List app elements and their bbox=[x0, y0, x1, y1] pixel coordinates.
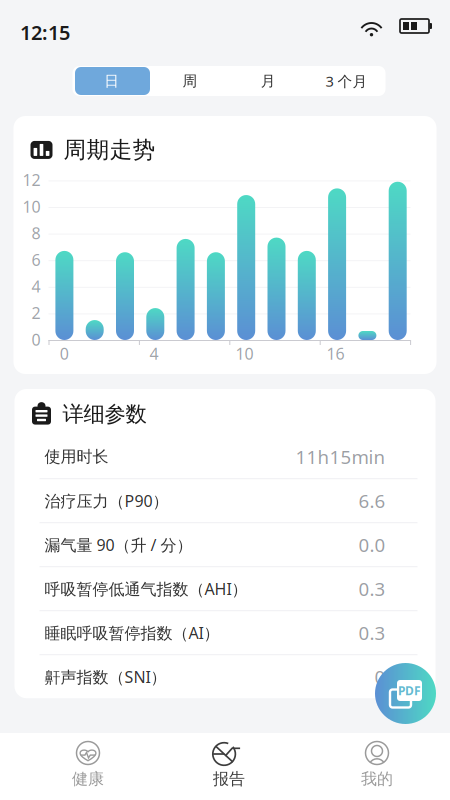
staticText: 治疗压力（P90） bbox=[44, 490, 168, 511]
staticText: 日 bbox=[104, 72, 119, 90]
staticText: 0 bbox=[31, 329, 40, 350]
staticText: 月 bbox=[261, 72, 276, 90]
staticText: 4 bbox=[150, 343, 159, 364]
button[interactable]: 报告 bbox=[155, 733, 295, 800]
staticText: 0 bbox=[60, 343, 69, 364]
staticText: 0.3 bbox=[358, 620, 385, 645]
button[interactable]: 鼾声指数（SNI） bbox=[14, 655, 435, 698]
button[interactable]: 3 个月 bbox=[307, 66, 385, 96]
staticText: 12 bbox=[22, 169, 40, 190]
staticText: 3 个月 bbox=[325, 71, 367, 91]
staticText: 12:15 bbox=[20, 19, 70, 46]
staticText: 2 bbox=[31, 302, 40, 323]
staticText: 0 bbox=[374, 664, 385, 689]
button[interactable]: 导出 PDF bbox=[375, 663, 436, 724]
button[interactable]: 我的 bbox=[307, 733, 447, 800]
button[interactable]: 漏气量 90（升 / 分） bbox=[14, 523, 435, 566]
button[interactable]: 月 bbox=[229, 66, 307, 96]
staticText: 6.6 bbox=[358, 488, 385, 513]
staticText: 4 bbox=[31, 276, 40, 297]
staticText: 周期走势 bbox=[63, 136, 155, 164]
staticText: 我的 bbox=[361, 769, 393, 789]
staticText: 鼾声指数（SNI） bbox=[44, 666, 166, 687]
staticText: 周 bbox=[182, 72, 197, 90]
button[interactable]: 使用时长 bbox=[14, 435, 435, 478]
staticText: 呼吸暂停低通气指数（AHI） bbox=[44, 578, 247, 599]
button[interactable]: 健康 bbox=[18, 733, 158, 800]
staticText: 睡眠呼吸暂停指数（AI） bbox=[44, 622, 219, 643]
staticText: 报告 bbox=[213, 769, 245, 789]
staticText: 健康 bbox=[72, 769, 104, 789]
staticText: 8 bbox=[31, 222, 40, 244]
staticText: 11h15min bbox=[295, 444, 385, 469]
staticText: 6 bbox=[31, 249, 40, 270]
button[interactable]: 睡眠呼吸暂停指数（AI） bbox=[14, 611, 435, 654]
staticText: PDF bbox=[398, 682, 421, 698]
staticText: 详细参数 bbox=[62, 401, 146, 427]
staticText: 漏气量 90（升 / 分） bbox=[44, 534, 192, 555]
staticText: 使用时长 bbox=[44, 447, 108, 467]
button[interactable]: 周 bbox=[151, 66, 229, 96]
staticText: 10 bbox=[235, 343, 253, 364]
staticText: 0.3 bbox=[358, 576, 385, 601]
button[interactable]: 治疗压力（P90） bbox=[14, 479, 435, 522]
staticText: 0.0 bbox=[358, 532, 385, 557]
button[interactable]: 呼吸暂停低通气指数（AHI） bbox=[14, 567, 435, 610]
staticText: 16 bbox=[326, 343, 344, 364]
staticText: 10 bbox=[22, 196, 40, 217]
button[interactable]: 日 bbox=[72, 66, 151, 96]
